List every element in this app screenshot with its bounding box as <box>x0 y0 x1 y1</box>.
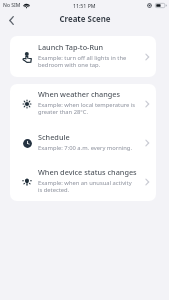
button[interactable]: Back <box>4 13 19 28</box>
button[interactable]: Launch Tap-to-Run <box>10 36 156 77</box>
staticText: Example: turn off all lights in the bedr… <box>38 54 127 69</box>
button[interactable]: Schedule <box>10 123 156 162</box>
staticText: Example: 7:00 a.m. every morning. <box>38 144 132 152</box>
staticText: Schedule <box>38 132 70 142</box>
staticText: When device status changes <box>38 167 137 177</box>
staticText: Example: when an unusual activity is det… <box>38 179 132 194</box>
staticText: Create Scene <box>59 14 111 25</box>
button[interactable]: When device status changes <box>10 162 156 201</box>
staticText: When weather changes <box>38 89 121 99</box>
button[interactable]: When weather changes <box>10 84 156 123</box>
staticText: Launch Tap-to-Run <box>38 42 104 52</box>
staticText: 11:51 PM <box>73 2 96 9</box>
staticText: No SIM <box>3 2 21 9</box>
staticText: Example: when local temperature is great… <box>38 101 136 116</box>
